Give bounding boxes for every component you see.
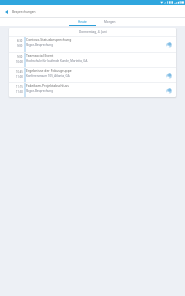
- staticText: 11:00: [16, 75, 23, 79]
- staticText: Hochschule für laufende Kunde, Marietta,…: [26, 59, 88, 63]
- button[interactable]: 10:45: [9, 68, 176, 82]
- staticText: Donnerstag, 4. Juni: [79, 30, 107, 34]
- staticText: Morgen: [104, 20, 116, 24]
- staticText: Skype-Besprechung: [26, 43, 53, 47]
- staticText: Teamsocial Event: [26, 53, 54, 58]
- button[interactable]: Join Skype meeting: [164, 86, 173, 95]
- button[interactable]: Join Skype meeting: [164, 71, 173, 80]
- staticText: Fabrikam-Projektabschluss: [26, 83, 69, 88]
- staticText: Heute: [78, 20, 87, 24]
- staticText: 10:00: [16, 60, 23, 64]
- button[interactable]: Heute: [69, 18, 96, 26]
- staticText: 11:15: [16, 85, 23, 89]
- staticText: Ergebnisse der Fokusgruppe: [26, 68, 72, 73]
- staticText: Besprechungen: [12, 10, 36, 14]
- staticText: 9:00: [17, 55, 23, 59]
- button[interactable]: Join Skype meeting: [164, 40, 173, 49]
- staticText: 10:45: [16, 70, 23, 74]
- staticText: 11:30: [16, 90, 23, 94]
- staticText: Skype-Besprechung: [26, 89, 53, 93]
- staticText: 8:30: [17, 39, 23, 43]
- button[interactable]: 11:15: [9, 83, 176, 97]
- button[interactable]: 8:30: [9, 37, 176, 52]
- button[interactable]: Morgen: [96, 18, 123, 26]
- button[interactable]: Back: [0, 5, 12, 18]
- staticText: 9:00: [17, 44, 23, 48]
- staticText: Contoso-Statusbesprechung: [26, 37, 72, 42]
- staticText: Konferenzraum 105, Atlanta, GA: [26, 74, 70, 78]
- button[interactable]: 9:00: [9, 53, 176, 67]
